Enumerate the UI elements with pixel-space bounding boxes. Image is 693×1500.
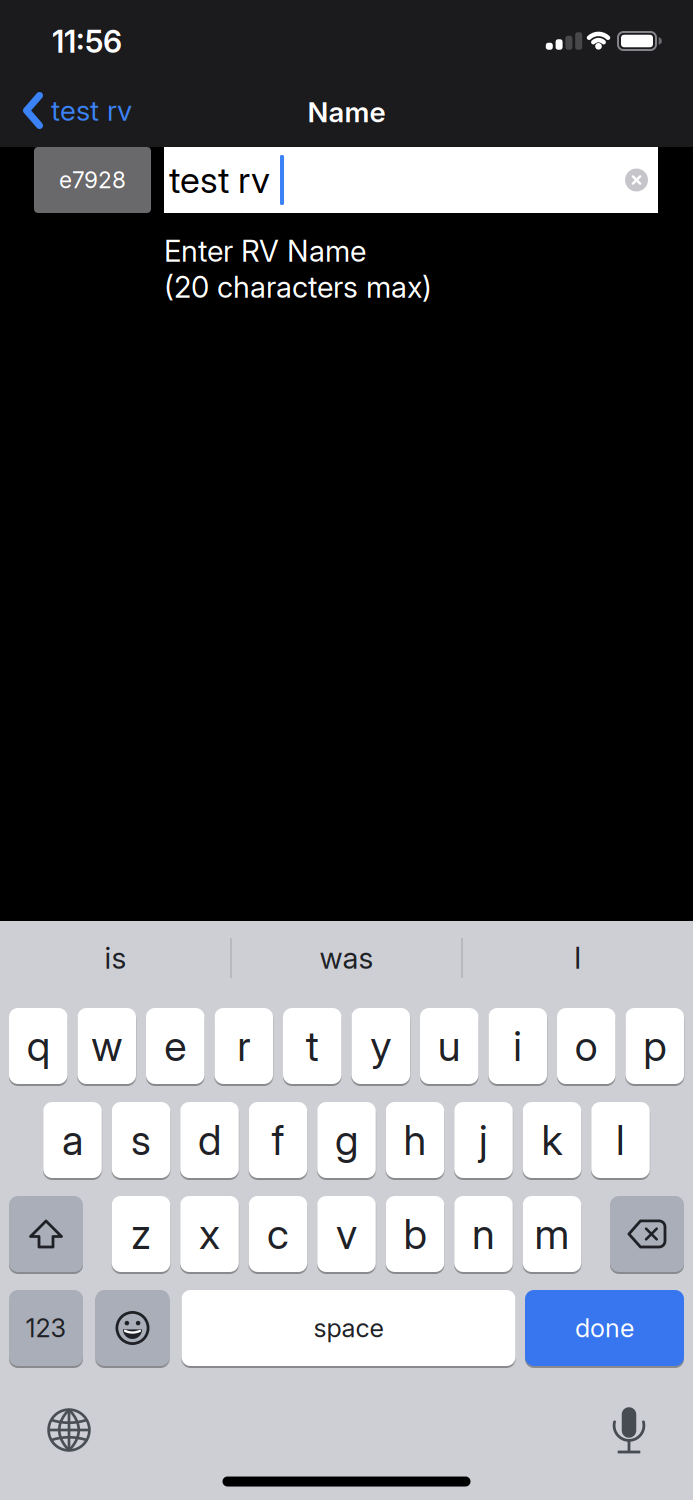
staticText: y — [370, 1022, 391, 1070]
staticText: n — [472, 1210, 495, 1258]
staticText: q — [27, 1022, 50, 1070]
button[interactable]: was — [256, 928, 436, 988]
button[interactable]: e — [146, 1008, 204, 1084]
button[interactable]: t — [283, 1008, 341, 1084]
staticText: (20 characters max) — [164, 270, 432, 304]
staticText: c — [267, 1210, 289, 1258]
button[interactable]: I — [487, 928, 667, 988]
button[interactable]: q — [9, 1008, 67, 1084]
staticText: f — [271, 1116, 284, 1164]
staticText: r — [237, 1022, 250, 1070]
staticText: e — [164, 1022, 186, 1070]
staticText: is — [104, 941, 126, 975]
button[interactable]: m — [523, 1196, 581, 1272]
staticText: m — [534, 1210, 569, 1258]
button[interactable]: done — [525, 1290, 684, 1366]
button[interactable]: k — [523, 1102, 581, 1178]
button[interactable]: g — [317, 1102, 376, 1178]
staticText: z — [131, 1210, 151, 1258]
staticText: done — [575, 1313, 634, 1343]
button[interactable]: v — [317, 1196, 376, 1272]
button[interactable]: space — [181, 1290, 515, 1366]
staticText: 11:56 — [52, 23, 122, 60]
staticText: p — [643, 1022, 666, 1070]
button[interactable]: Clear text — [619, 147, 654, 213]
button[interactable]: h — [386, 1102, 444, 1178]
staticText: space — [313, 1313, 383, 1343]
button[interactable]: i — [488, 1008, 547, 1084]
staticText: b — [403, 1210, 426, 1258]
staticText: Enter RV Name — [164, 234, 366, 268]
staticText: l — [616, 1116, 625, 1164]
button[interactable]: b — [386, 1196, 444, 1272]
button[interactable]: Dictate — [599, 1400, 659, 1460]
button[interactable]: test rv — [23, 85, 132, 135]
staticText: h — [403, 1116, 426, 1164]
button[interactable]: s — [112, 1102, 170, 1178]
staticText: x — [199, 1210, 220, 1258]
staticText: i — [513, 1022, 522, 1070]
staticText: e7928 — [59, 167, 126, 193]
button[interactable]: r — [214, 1008, 273, 1084]
button[interactable]: z — [112, 1196, 170, 1272]
button[interactable]: a — [43, 1102, 102, 1178]
staticText: 123 — [25, 1313, 66, 1343]
button[interactable]: c — [249, 1196, 307, 1272]
staticText: g — [335, 1116, 358, 1164]
staticText: u — [438, 1022, 461, 1070]
staticText: s — [131, 1116, 151, 1164]
button[interactable]: is — [25, 928, 205, 988]
staticText: o — [575, 1022, 598, 1070]
staticText: d — [198, 1116, 221, 1164]
staticText: test rv — [169, 159, 270, 201]
button[interactable]: o — [557, 1008, 615, 1084]
button[interactable]: u — [420, 1008, 478, 1084]
button[interactable]: f — [249, 1102, 307, 1178]
staticText: w — [91, 1022, 122, 1070]
button[interactable]: j — [454, 1102, 513, 1178]
button[interactable]: Delete — [610, 1196, 684, 1272]
button[interactable]: Emoji — [95, 1290, 169, 1366]
button[interactable]: y — [351, 1008, 410, 1084]
staticText: Name — [307, 95, 385, 128]
staticText: j — [479, 1116, 488, 1164]
staticText: I — [574, 941, 581, 975]
button[interactable]: l — [591, 1102, 650, 1178]
button[interactable]: n — [454, 1196, 513, 1272]
staticText: k — [541, 1116, 562, 1164]
button[interactable]: p — [625, 1008, 684, 1084]
staticText: t — [306, 1022, 319, 1070]
button[interactable]: d — [180, 1102, 239, 1178]
button[interactable]: w — [77, 1008, 136, 1084]
staticText: a — [62, 1116, 83, 1164]
staticText: v — [336, 1210, 357, 1258]
button[interactable]: Shift — [9, 1196, 83, 1272]
button[interactable]: 123 — [9, 1290, 83, 1366]
staticText: was — [319, 941, 373, 975]
staticText: test rv — [51, 94, 132, 127]
button[interactable]: x — [180, 1196, 239, 1272]
button[interactable]: Next keyboard — [39, 1400, 99, 1460]
